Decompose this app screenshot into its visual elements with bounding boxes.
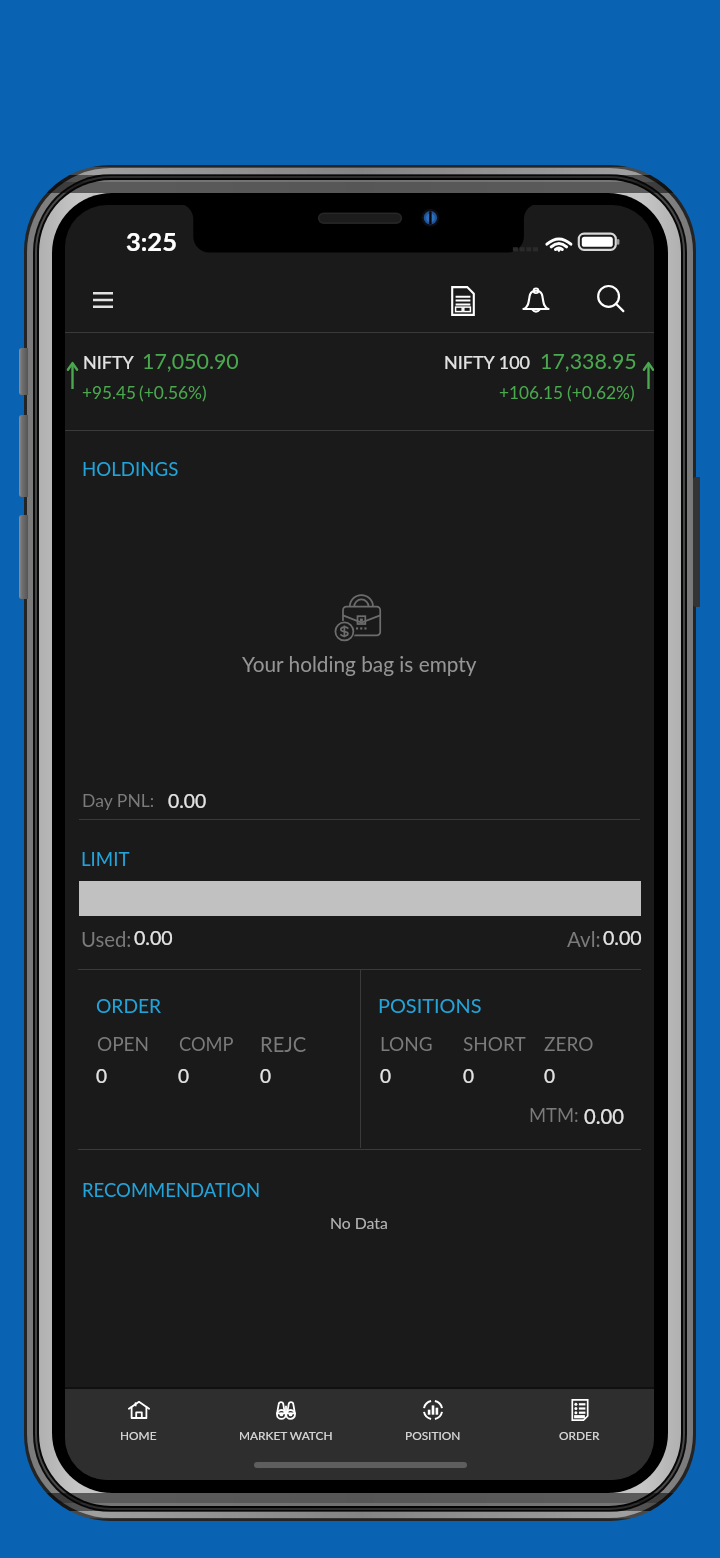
staticText: Your holding bag is empty [242, 651, 477, 676]
staticText: POSITION [405, 1428, 461, 1442]
staticText: MTM: [529, 1104, 579, 1126]
button[interactable]: MARKET WATCH [212, 1389, 359, 1480]
staticText: POSITIONS [378, 993, 482, 1017]
staticText: HOME [120, 1428, 157, 1442]
button[interactable]: Reports [437, 275, 489, 327]
button[interactable]: Search [585, 274, 637, 326]
staticText: (+0.62%) [567, 382, 635, 403]
staticText: 17,050.90 [142, 348, 239, 374]
staticText: OPEN [97, 1032, 150, 1055]
staticText: 0 [544, 1064, 556, 1087]
staticText: LIMIT [81, 848, 130, 870]
staticText: ORDER [96, 994, 162, 1017]
staticText: +95.45 [82, 382, 136, 403]
staticText: 0 [178, 1064, 190, 1087]
staticText: COMP [179, 1033, 234, 1055]
staticText: Avl: [567, 927, 601, 952]
staticText: (+0.56%) [139, 382, 207, 403]
button[interactable]: Notifications [510, 275, 562, 327]
staticText: ZERO [544, 1032, 594, 1055]
staticText: 3:25 [126, 226, 177, 257]
button[interactable]: HOME [65, 1389, 212, 1480]
staticText: ORDER [559, 1428, 600, 1442]
staticText: 0 [380, 1064, 392, 1087]
staticText: LONG [380, 1032, 433, 1055]
staticText: NIFTY 100 [444, 351, 531, 373]
staticText: Day PNL: [82, 790, 155, 811]
button[interactable]: ORDER [506, 1389, 653, 1480]
staticText: +106.15 [499, 382, 563, 403]
staticText: 0.00 [584, 1104, 624, 1128]
staticText: No Data [330, 1213, 388, 1232]
staticText: 17,338.95 [540, 348, 637, 374]
staticText: 0 [96, 1064, 108, 1087]
staticText: 0.00 [134, 926, 173, 950]
button[interactable]: POSITION [359, 1389, 506, 1480]
staticText: REJC [260, 1032, 307, 1056]
staticText: 0.00 [603, 926, 642, 950]
staticText: RECOMMENDATION [82, 1179, 261, 1201]
staticText: HOLDINGS [82, 458, 179, 480]
staticText: SHORT [463, 1032, 526, 1055]
staticText: MARKET WATCH [239, 1428, 333, 1442]
staticText: 0 [463, 1064, 475, 1087]
staticText: NIFTY [83, 351, 134, 373]
button[interactable]: Menu [75, 272, 131, 328]
staticText: Used: [81, 927, 132, 951]
staticText: 0 [260, 1064, 272, 1087]
staticText: 0.00 [168, 789, 207, 812]
